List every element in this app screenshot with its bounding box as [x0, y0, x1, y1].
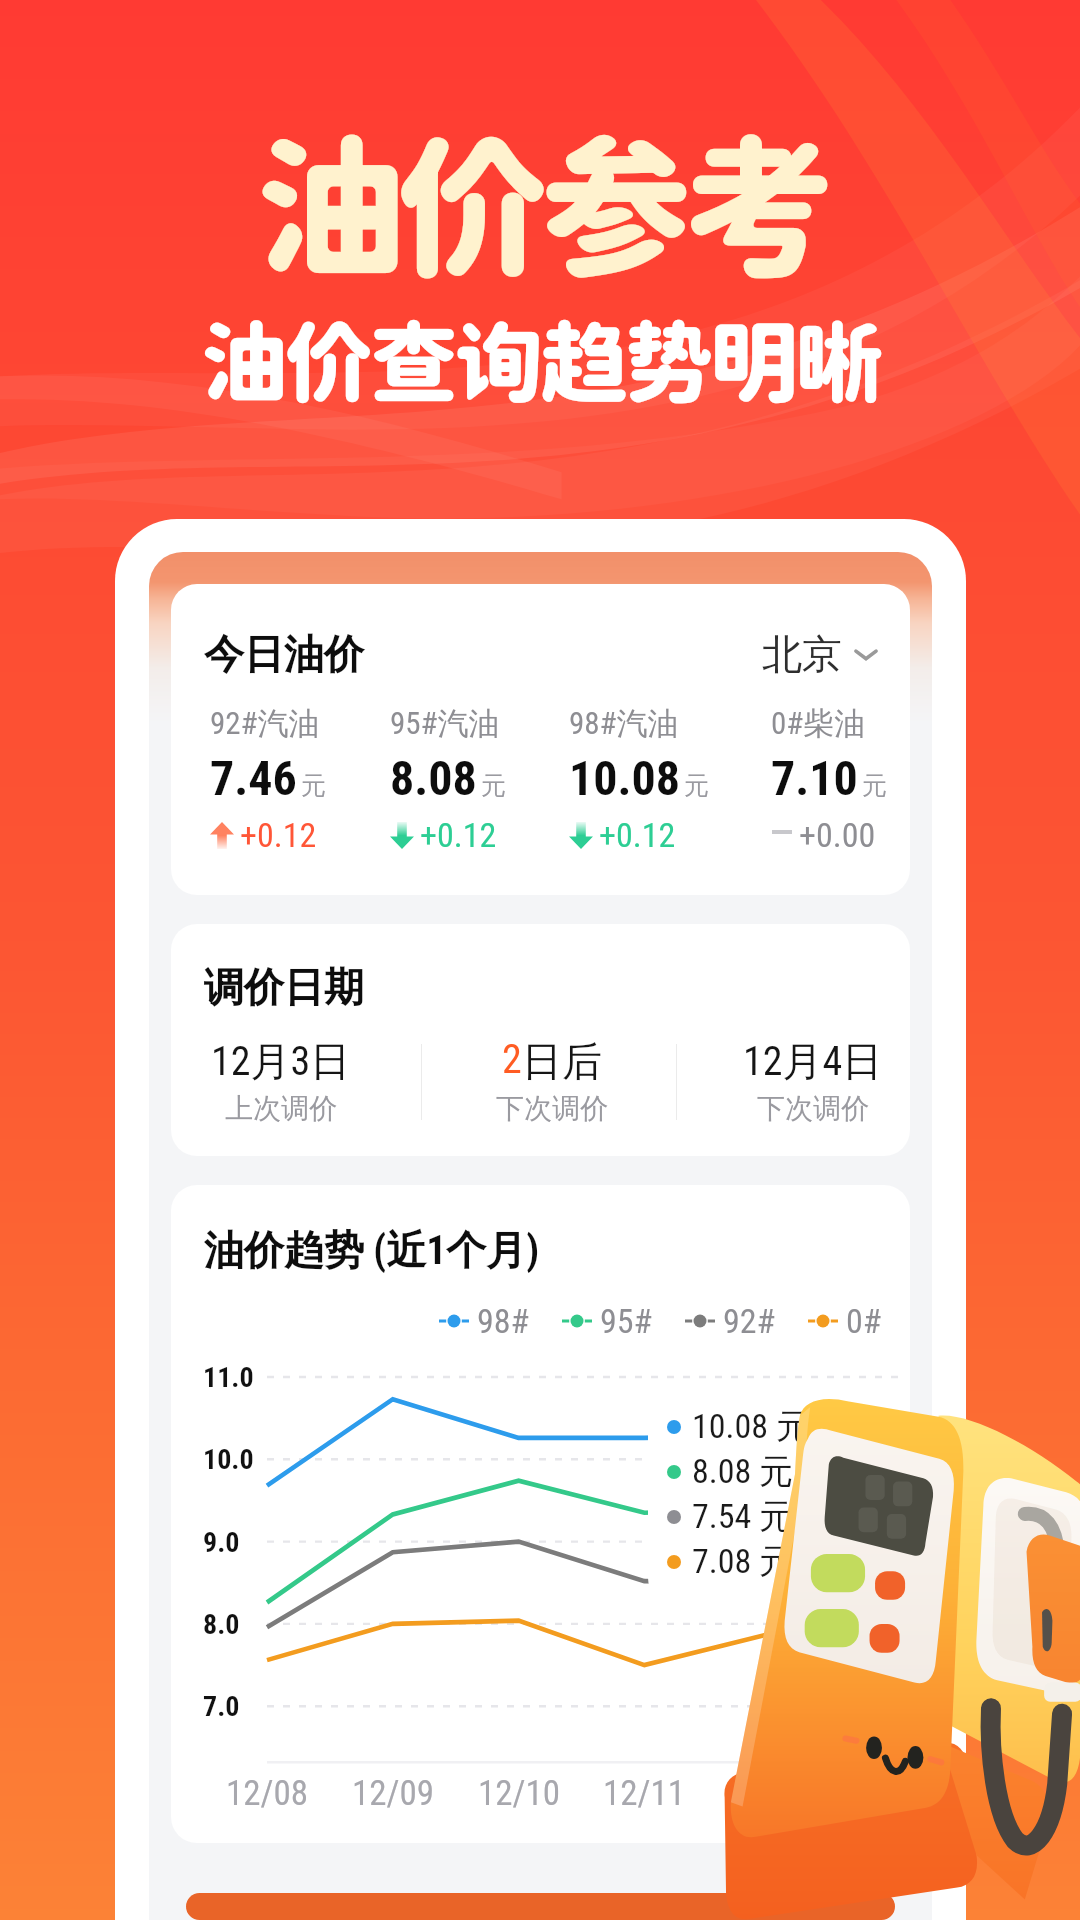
button[interactable]: 调价日期 [171, 924, 910, 1156]
staticText: 7.0 [203, 1690, 240, 1723]
other: Change city [854, 642, 878, 666]
button[interactable]: 油价趋势 (近1个月) [171, 1185, 910, 1843]
staticText: 北京 [762, 629, 842, 679]
staticText: 元 [684, 770, 709, 801]
staticText: 12/09 [352, 1773, 435, 1814]
button[interactable]: 北京 [758, 625, 882, 683]
staticText: 元 [481, 770, 506, 801]
staticText: +0.12 [240, 815, 317, 855]
staticText: 7.08 元/升 [692, 1540, 840, 1583]
staticText: 12月3日 [211, 1036, 351, 1086]
staticText: 下次调价 [757, 1091, 869, 1126]
button[interactable]: 2 [423, 1036, 681, 1126]
staticText: 7.54 元/升 [692, 1495, 840, 1538]
staticText: 上次调价 [225, 1091, 337, 1126]
staticText: 7.10 [771, 750, 858, 806]
staticText: 0# [846, 1301, 882, 1341]
staticText: 98#汽油 [569, 704, 679, 743]
staticText: 8.08 [390, 750, 477, 806]
staticText: 7.46 [210, 750, 297, 806]
staticText: 92#汽油 [210, 704, 320, 743]
staticText: 元 [862, 770, 887, 801]
staticText: 2 [502, 1036, 522, 1083]
button[interactable]: 12月4日 [684, 1036, 910, 1126]
staticText: 8.08 元/升 [692, 1450, 840, 1493]
button[interactable]: 今日油价 [171, 584, 910, 895]
staticText: 0#柴油 [771, 704, 866, 743]
staticText: 油价参考 [254, 117, 826, 296]
staticText: 10.08 元/升 [692, 1405, 857, 1448]
staticText: 95# [600, 1301, 653, 1341]
button[interactable]: 98# [439, 1301, 530, 1341]
staticText: +0.00 [799, 815, 876, 855]
staticText: 元 [301, 770, 326, 801]
staticText: 下次调价 [496, 1091, 608, 1126]
staticText: 11.0 [203, 1361, 254, 1394]
staticText: 12/11 [603, 1773, 686, 1814]
button[interactable]: 12月3日 [171, 1036, 410, 1126]
staticText: 调价日期 [204, 962, 364, 1012]
staticText: 8.0 [203, 1608, 240, 1641]
staticText: 12月4日 [743, 1036, 883, 1086]
button[interactable]: 95# [562, 1301, 653, 1341]
staticText: 98# [477, 1301, 530, 1341]
staticText: 今日油价 [204, 629, 364, 679]
staticText: +0.12 [420, 815, 497, 855]
staticText: 油价查询趋势明晰 [200, 310, 881, 414]
button[interactable]: 0# [808, 1301, 882, 1341]
staticText: 日后 [522, 1036, 602, 1086]
staticText: 9.0 [203, 1526, 240, 1559]
staticText: 12/10 [478, 1773, 561, 1814]
staticText: 10.0 [203, 1443, 254, 1476]
staticText: 油价趋势 (近1个月) [204, 1225, 540, 1275]
staticText: 10.08 [569, 750, 680, 806]
button[interactable]: 一键查询油价 [186, 1893, 895, 1920]
staticText: 92# [723, 1301, 776, 1341]
staticText: 95#汽油 [390, 704, 500, 743]
staticText: +0.12 [599, 815, 676, 855]
other: Fuel pump illustration [735, 1380, 1080, 1920]
staticText: 12/08 [226, 1773, 309, 1814]
button[interactable]: 10.08 元/升 [648, 1386, 910, 1602]
button[interactable]: 92# [685, 1301, 776, 1341]
